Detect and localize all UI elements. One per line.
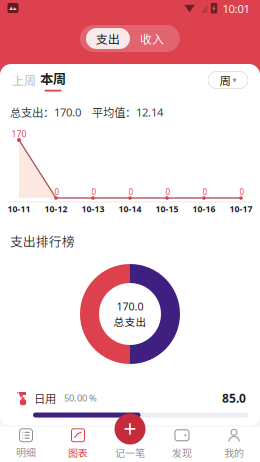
staticText: 本周 (40, 68, 66, 88)
staticText: ▾ (232, 75, 236, 85)
staticText: 明细 (16, 445, 36, 459)
button[interactable]: 图表 (52, 426, 104, 462)
staticText: 日用 (34, 390, 56, 406)
staticText: 总支出 (113, 313, 146, 329)
staticText: 50.00 % (64, 392, 97, 404)
staticText: 170.0 (116, 299, 143, 313)
staticText: 上周 (12, 71, 36, 89)
staticText: 我的 (224, 445, 244, 460)
staticText: 85.0 (222, 390, 246, 406)
staticText: 0 (202, 187, 207, 197)
staticText: 170.0 (54, 104, 81, 120)
staticText: 0 (54, 187, 59, 197)
button[interactable]: 上周 (12, 68, 36, 92)
staticText: 10-17 (229, 203, 252, 215)
staticText: 0 (165, 187, 170, 197)
staticText: 10-13 (81, 203, 104, 215)
staticText: 支出排行榜 (10, 232, 75, 250)
button[interactable]: 收入 (130, 28, 174, 49)
staticText: 0 (239, 187, 244, 197)
staticText: + (123, 414, 136, 444)
button[interactable]: 发现 (156, 426, 208, 462)
button[interactable]: 周 (208, 71, 248, 88)
staticText: 10-14 (118, 203, 141, 215)
staticText: 支出 (96, 30, 120, 47)
staticText: 图表 (68, 445, 88, 460)
staticText: 发现 (172, 445, 192, 460)
staticText: 0 (128, 187, 133, 197)
staticText: 10-11 (7, 203, 30, 215)
staticText: 10:01 (222, 1, 249, 16)
staticText: 10-16 (192, 203, 215, 215)
staticText: 10-12 (44, 203, 67, 215)
staticText: 10-15 (155, 203, 178, 215)
button[interactable]: 记一笔 (114, 413, 145, 444)
staticText: 周 (219, 72, 230, 88)
button[interactable]: 本周 (40, 68, 66, 92)
button[interactable]: 支出 (86, 28, 130, 49)
staticText: 170 (11, 128, 26, 140)
staticText: 平均值： (92, 104, 136, 120)
staticText: 总支出： (10, 104, 54, 120)
staticText: 记一笔 (115, 445, 145, 460)
staticText: 收入 (140, 30, 164, 47)
button[interactable]: 记一笔 (104, 426, 156, 462)
button[interactable]: 明细 (0, 426, 52, 462)
button[interactable]: 我的 (208, 426, 260, 462)
staticText: 0 (91, 187, 96, 197)
staticText: 12.14 (136, 104, 163, 120)
